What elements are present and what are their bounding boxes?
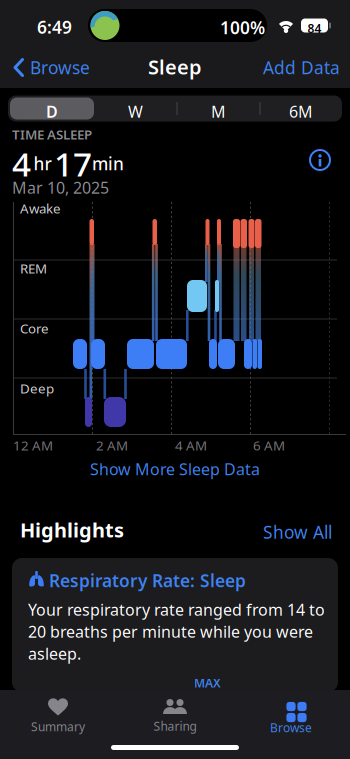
staticText: Your respiratory rate ranged from 14 to	[28, 599, 325, 620]
staticText: 84	[307, 20, 321, 36]
staticText: hr	[33, 152, 51, 175]
staticText: Sleep	[148, 53, 202, 80]
staticText: Respiratory Rate: Sleep	[49, 569, 246, 592]
button[interactable]: Browse	[13, 56, 90, 79]
staticText: Show More Sleep Data	[90, 458, 260, 480]
staticText: asleep.	[28, 643, 81, 664]
staticText: 2 AM	[96, 436, 128, 454]
staticText: Mar 10, 2025	[12, 177, 109, 198]
button[interactable]: W	[94, 101, 177, 122]
staticText: W	[128, 101, 143, 122]
staticText: D	[46, 101, 58, 122]
button[interactable]: Summary	[8, 694, 108, 738]
button[interactable]: Add Data	[263, 56, 340, 79]
button[interactable]: M	[177, 101, 260, 122]
staticText: 100%	[220, 16, 265, 39]
staticText: Sharing	[153, 718, 196, 734]
button[interactable]: Show All	[263, 520, 332, 543]
button[interactable]: 6M	[260, 101, 342, 122]
staticText: 6:49	[37, 15, 72, 38]
staticText: Awake	[20, 199, 61, 217]
staticText: Core	[20, 319, 49, 337]
staticText: REM	[20, 259, 47, 277]
button[interactable]: D	[10, 101, 94, 122]
button[interactable]: Respiratory Rate: Sleep	[12, 558, 338, 692]
staticText: M	[211, 101, 226, 122]
button[interactable]: Show More Sleep Data	[0, 458, 350, 480]
staticText: 20 breaths per minute while you were	[28, 621, 313, 642]
staticText: 4	[12, 141, 31, 186]
staticText: MAX	[194, 675, 221, 691]
staticText: Deep	[20, 379, 54, 397]
staticText: 12 AM	[13, 436, 53, 454]
button[interactable]: Sharing	[125, 694, 225, 738]
staticText: TIME ASLEEP	[12, 125, 92, 143]
button[interactable]	[310, 150, 330, 170]
staticText: Show All	[263, 520, 332, 543]
staticText: min	[92, 152, 124, 175]
button[interactable]: Browse	[241, 694, 341, 738]
staticText: 6 AM	[253, 436, 285, 454]
staticText: 17	[54, 141, 92, 186]
staticText: 6M	[289, 101, 313, 122]
staticText: Browse	[30, 56, 90, 79]
staticText: Highlights	[20, 516, 124, 543]
staticText: Browse	[270, 720, 312, 735]
staticText: Summary	[31, 718, 85, 734]
staticText: Add Data	[263, 56, 340, 79]
staticText: 4 AM	[175, 436, 207, 454]
